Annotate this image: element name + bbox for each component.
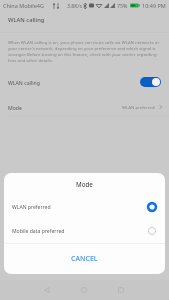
staticText: 75%	[117, 2, 128, 9]
staticText: Mode	[76, 180, 93, 188]
staticText: WLAN calling	[8, 16, 45, 24]
staticText: 10:49 PM	[142, 2, 166, 9]
staticText: When WLAN calling is on, your phone can …	[8, 39, 161, 63]
button[interactable]: WLAN calling	[0, 70, 169, 94]
staticText: CANCEL	[71, 254, 98, 264]
staticText: WLAN preferred	[122, 104, 155, 110]
staticText: WLAN calling	[8, 79, 40, 86]
staticText: Mode	[8, 104, 22, 111]
staticText: WLAN preferred	[12, 204, 51, 211]
staticText: 3.8K/s	[67, 2, 82, 9]
staticText: China Mobile4G	[3, 2, 44, 9]
button[interactable]: CANCEL	[4, 244, 165, 274]
staticText: Mobile data preferred	[12, 228, 65, 235]
button[interactable]: WLAN preferred	[4, 195, 165, 219]
button[interactable]: Mobile data preferred	[4, 219, 165, 243]
button[interactable]: Mode	[0, 95, 169, 119]
